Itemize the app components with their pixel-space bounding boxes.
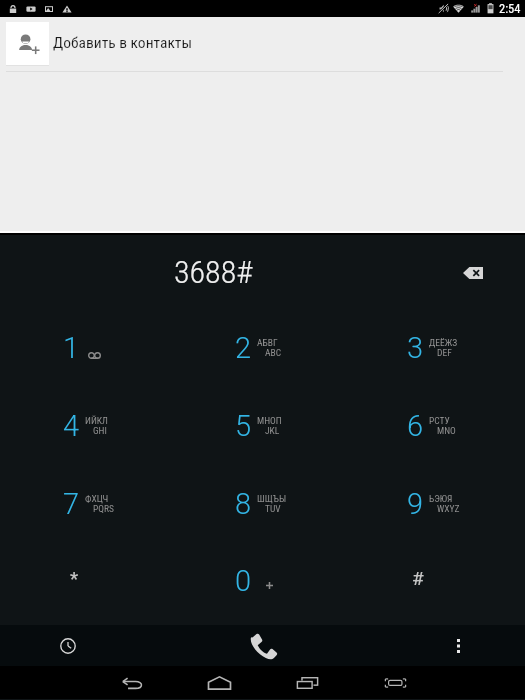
button[interactable]: Home xyxy=(197,670,241,696)
button[interactable]: 6 xyxy=(344,387,525,465)
staticText: JKL xyxy=(265,425,280,436)
button[interactable]: Call xyxy=(239,625,287,666)
staticText: * xyxy=(70,567,79,589)
staticText: АБВГ xyxy=(257,337,278,348)
staticText: # xyxy=(412,567,424,589)
staticText: 5 xyxy=(235,409,252,443)
button[interactable]: 7 xyxy=(0,465,172,543)
button[interactable]: Call history xyxy=(44,625,92,666)
staticText: DEF xyxy=(437,347,452,358)
button[interactable]: 0 xyxy=(172,543,344,619)
staticText: 7 xyxy=(63,487,80,521)
button[interactable]: Recents xyxy=(285,670,329,696)
staticText: 2:54 xyxy=(499,1,521,16)
staticText: ЬЭЮЯ xyxy=(429,493,453,504)
staticText: 3 xyxy=(407,331,424,365)
staticText: РСТУ xyxy=(429,415,450,426)
staticText: 2 xyxy=(235,331,252,365)
button[interactable]: Screenshot xyxy=(373,670,417,696)
staticText: 1 xyxy=(63,331,80,365)
staticText: GHI xyxy=(93,425,107,436)
button[interactable]: 9 xyxy=(344,465,525,543)
staticText: ШЩЪЫ xyxy=(257,493,287,504)
staticText: ДЕЁЖЗ xyxy=(429,337,458,348)
button[interactable]: More options xyxy=(434,625,482,666)
staticText: PQRS xyxy=(93,503,114,514)
staticText: ABC xyxy=(265,347,282,358)
button[interactable]: 8 xyxy=(172,465,344,543)
staticText: 4 xyxy=(63,409,80,443)
button[interactable]: 4 xyxy=(0,387,172,465)
staticText: 8 xyxy=(235,487,252,521)
button[interactable]: 5 xyxy=(172,387,344,465)
button[interactable]: Back xyxy=(110,670,154,696)
staticText: МНОП xyxy=(257,415,282,426)
staticText: MNO xyxy=(437,425,456,436)
staticText: TUV xyxy=(265,503,281,514)
button[interactable]: 1 xyxy=(0,309,172,387)
button[interactable]: 3 xyxy=(344,309,525,387)
staticText: 9 xyxy=(407,487,424,521)
staticText: ФХЦЧ xyxy=(85,493,109,504)
button[interactable]: Backspace xyxy=(450,250,495,295)
staticText: ИЙКЛ xyxy=(85,415,108,426)
button[interactable]: # xyxy=(344,543,525,619)
staticText: 6 xyxy=(407,409,424,443)
staticText: 0 xyxy=(235,564,252,598)
button[interactable]: 2 xyxy=(172,309,344,387)
staticText: Добавить в контакты xyxy=(53,34,193,52)
button[interactable]: Добавить в контакты xyxy=(0,22,525,66)
staticText: WXYZ xyxy=(437,503,460,514)
staticText: 3688# xyxy=(174,253,253,291)
button[interactable]: * xyxy=(0,543,172,619)
